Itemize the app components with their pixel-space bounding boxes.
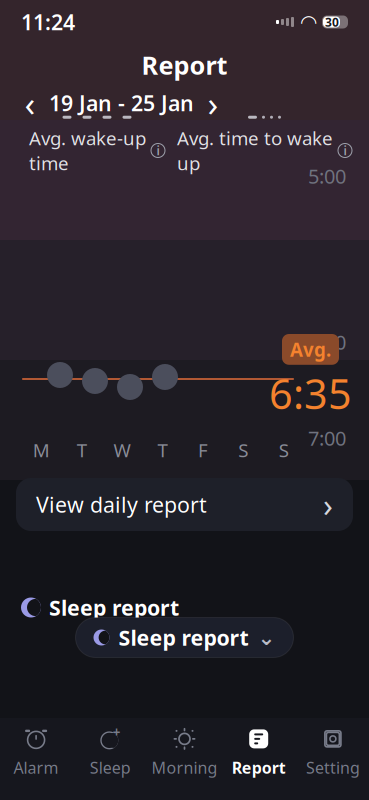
button[interactable]: Setting: [296, 727, 369, 777]
staticText: Setting: [306, 757, 360, 778]
button[interactable]: Next week: [198, 86, 228, 120]
staticText: Sleep: [90, 757, 131, 778]
staticText: View daily report: [36, 490, 207, 519]
button[interactable]: Previous week: [15, 86, 45, 120]
staticText: 19 Jan - 25 Jan: [49, 89, 194, 117]
staticText: ›: [207, 80, 218, 126]
staticText: Avg. wake-up time: [29, 126, 146, 175]
button[interactable]: Report: [222, 727, 296, 777]
button[interactable]: Sleep report: [75, 617, 293, 657]
staticText: Alarm: [14, 757, 59, 778]
staticText: ‹: [24, 80, 35, 126]
staticText: 6:00: [308, 329, 346, 355]
staticText: Report: [141, 48, 227, 82]
staticText: Avg. time to wake up: [177, 126, 333, 175]
staticText: F: [198, 438, 208, 462]
staticText: Avg.: [290, 337, 331, 362]
staticText: 7:00: [308, 425, 346, 451]
staticText: Sleep report: [118, 623, 248, 652]
staticText: S: [279, 438, 289, 462]
staticText: W: [114, 438, 131, 462]
staticText: T: [157, 438, 167, 462]
staticText: 5:00: [308, 163, 346, 189]
staticText: T: [77, 438, 87, 462]
staticText: i: [343, 142, 346, 158]
staticText: Report: [232, 757, 286, 778]
staticText: ›: [323, 483, 333, 526]
button[interactable]: View daily report: [16, 478, 353, 531]
staticText: S: [238, 438, 248, 462]
staticText: M: [33, 438, 50, 462]
staticText: ◠: [301, 11, 316, 33]
staticText: 30: [325, 14, 339, 30]
button[interactable]: +: [73, 727, 147, 777]
staticText: 6:35: [269, 366, 352, 421]
staticText: +: [113, 723, 121, 741]
staticText: i: [156, 142, 159, 158]
button[interactable]: Alarm: [0, 727, 73, 777]
staticText: Morning: [151, 757, 217, 778]
staticText: ⌄: [257, 625, 275, 650]
button[interactable]: Morning: [147, 727, 222, 777]
staticText: Sleep report: [49, 593, 179, 622]
staticText: 11:24: [21, 8, 75, 36]
